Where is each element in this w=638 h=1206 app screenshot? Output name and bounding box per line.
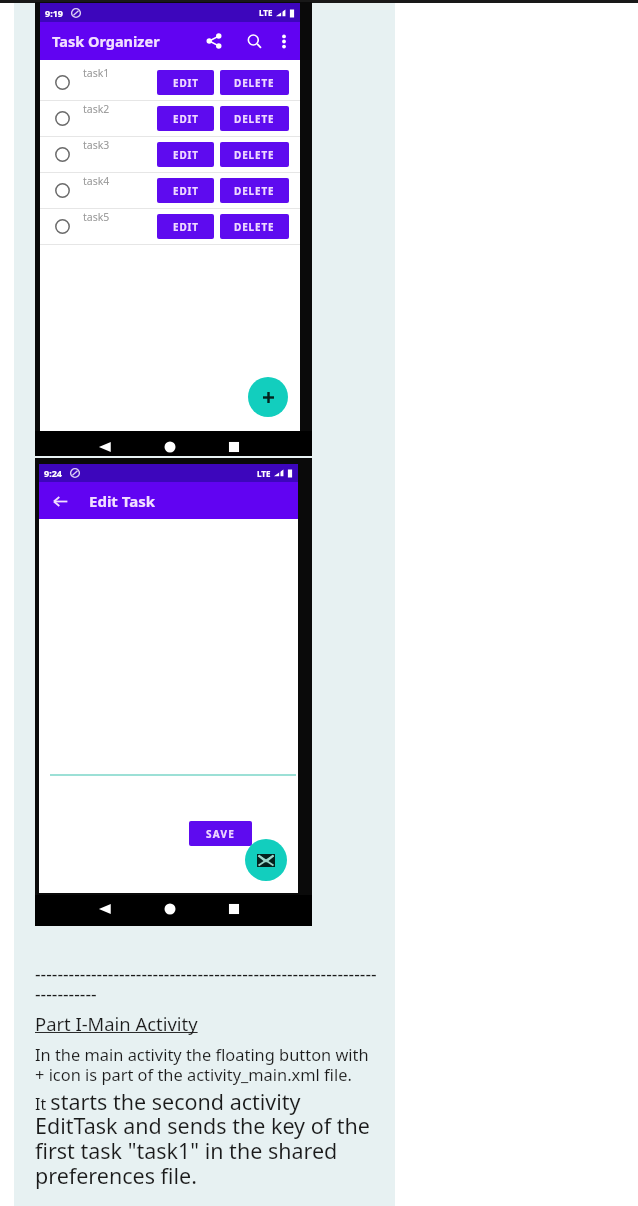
button[interactable]: task4 <box>40 173 300 209</box>
staticText: LTE <box>257 468 271 479</box>
staticText: task5 <box>83 210 110 224</box>
button[interactable]: DELETE <box>220 142 289 167</box>
button[interactable]: Back <box>96 900 114 918</box>
button[interactable]: Search <box>243 30 265 52</box>
button[interactable]: Recents <box>225 900 243 918</box>
staticText: task4 <box>83 174 110 188</box>
button[interactable]: EDIT <box>157 106 214 131</box>
staticText: Task Organizer <box>52 31 160 51</box>
staticText: SAVE <box>206 827 235 841</box>
staticText: EDIT <box>173 220 199 233</box>
staticText: DELETE <box>234 76 275 89</box>
button[interactable]: Send email <box>245 839 287 881</box>
staticText: DELETE <box>234 148 275 161</box>
staticText: task3 <box>83 138 110 152</box>
staticText: DELETE <box>234 220 275 233</box>
staticText: In the main activity the floating button… <box>35 1043 369 1086</box>
button[interactable]: task1 <box>40 65 300 101</box>
button[interactable]: DELETE <box>220 214 289 239</box>
staticText: LTE <box>259 7 273 18</box>
staticText: Part I-Main Activity <box>35 1011 198 1036</box>
staticText: task1 <box>83 66 110 80</box>
staticText: DELETE <box>234 112 275 125</box>
button[interactable]: Home <box>161 438 179 456</box>
staticText: It starts the second activity EditTask a… <box>35 1087 370 1191</box>
button[interactable]: Share <box>203 30 225 52</box>
button[interactable]: EDIT <box>157 214 214 239</box>
button[interactable]: Back <box>96 438 114 456</box>
staticText: Edit Task <box>89 491 156 511</box>
button[interactable]: Add task <box>248 377 288 417</box>
staticText: DELETE <box>234 184 275 197</box>
staticText: EDIT <box>173 184 199 197</box>
staticText: ----------------------------------------… <box>35 962 377 1006</box>
button[interactable]: DELETE <box>220 178 289 203</box>
button[interactable]: SAVE <box>189 821 252 846</box>
button[interactable]: Back <box>50 491 70 511</box>
button[interactable]: EDIT <box>157 142 214 167</box>
button[interactable]: task2 <box>40 101 300 137</box>
staticText: EDIT <box>173 148 199 161</box>
button[interactable]: Home <box>161 900 179 918</box>
button[interactable]: DELETE <box>220 106 289 131</box>
button[interactable]: Recents <box>225 438 243 456</box>
staticText: EDIT <box>173 76 199 89</box>
button[interactable]: task3 <box>40 137 300 173</box>
button[interactable]: task5 <box>40 209 300 245</box>
staticText: task2 <box>83 102 110 116</box>
button[interactable]: EDIT <box>157 178 214 203</box>
button[interactable]: EDIT <box>157 70 214 95</box>
staticText: 9:19 <box>45 7 63 19</box>
button[interactable]: More options <box>275 32 293 50</box>
button[interactable]: DELETE <box>220 70 289 95</box>
staticText: 9:24 <box>44 467 62 479</box>
staticText: EDIT <box>173 112 199 125</box>
